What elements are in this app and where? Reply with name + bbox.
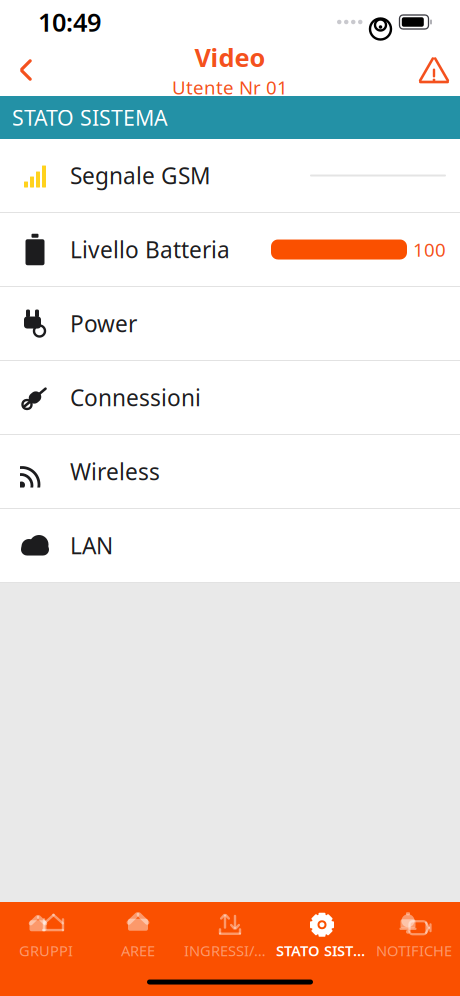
button[interactable]: NOTIFICHE bbox=[368, 904, 460, 966]
staticText: Connessioni bbox=[70, 382, 201, 412]
button[interactable]: Wireless bbox=[0, 435, 460, 509]
button[interactable]: Segnale GSM bbox=[0, 139, 460, 213]
staticText: Livello Batteria bbox=[70, 234, 230, 264]
staticText: Wireless bbox=[70, 456, 160, 486]
staticText: 100 bbox=[413, 237, 446, 262]
staticText: GRUPPI bbox=[19, 941, 73, 960]
button[interactable]: Livello Batteria bbox=[0, 213, 460, 287]
staticText: Video bbox=[194, 40, 265, 74]
staticText: AREE bbox=[121, 941, 155, 960]
staticText: Segnale GSM bbox=[70, 160, 211, 190]
staticText: LAN bbox=[70, 530, 113, 560]
button[interactable]: STATO SISTE… bbox=[276, 904, 368, 966]
staticText: Utente Nr 01 bbox=[172, 75, 288, 100]
button[interactable]: Warnings bbox=[408, 45, 460, 95]
button[interactable]: INGRESSI/US… bbox=[184, 904, 276, 966]
staticText: Power bbox=[70, 308, 137, 338]
button[interactable]: Connessioni bbox=[0, 361, 460, 435]
button[interactable]: GRUPPI bbox=[0, 904, 92, 966]
button[interactable]: Power bbox=[0, 287, 460, 361]
staticText: STATO SISTEMA bbox=[12, 103, 168, 132]
button[interactable]: Back bbox=[0, 45, 52, 95]
staticText: STATO SISTE… bbox=[276, 941, 368, 960]
staticText: INGRESSI/US… bbox=[184, 941, 276, 960]
button[interactable]: LAN bbox=[0, 509, 460, 583]
button[interactable]: AREE bbox=[92, 904, 184, 966]
staticText: NOTIFICHE bbox=[376, 941, 452, 960]
staticText: 10:49 bbox=[38, 5, 101, 39]
